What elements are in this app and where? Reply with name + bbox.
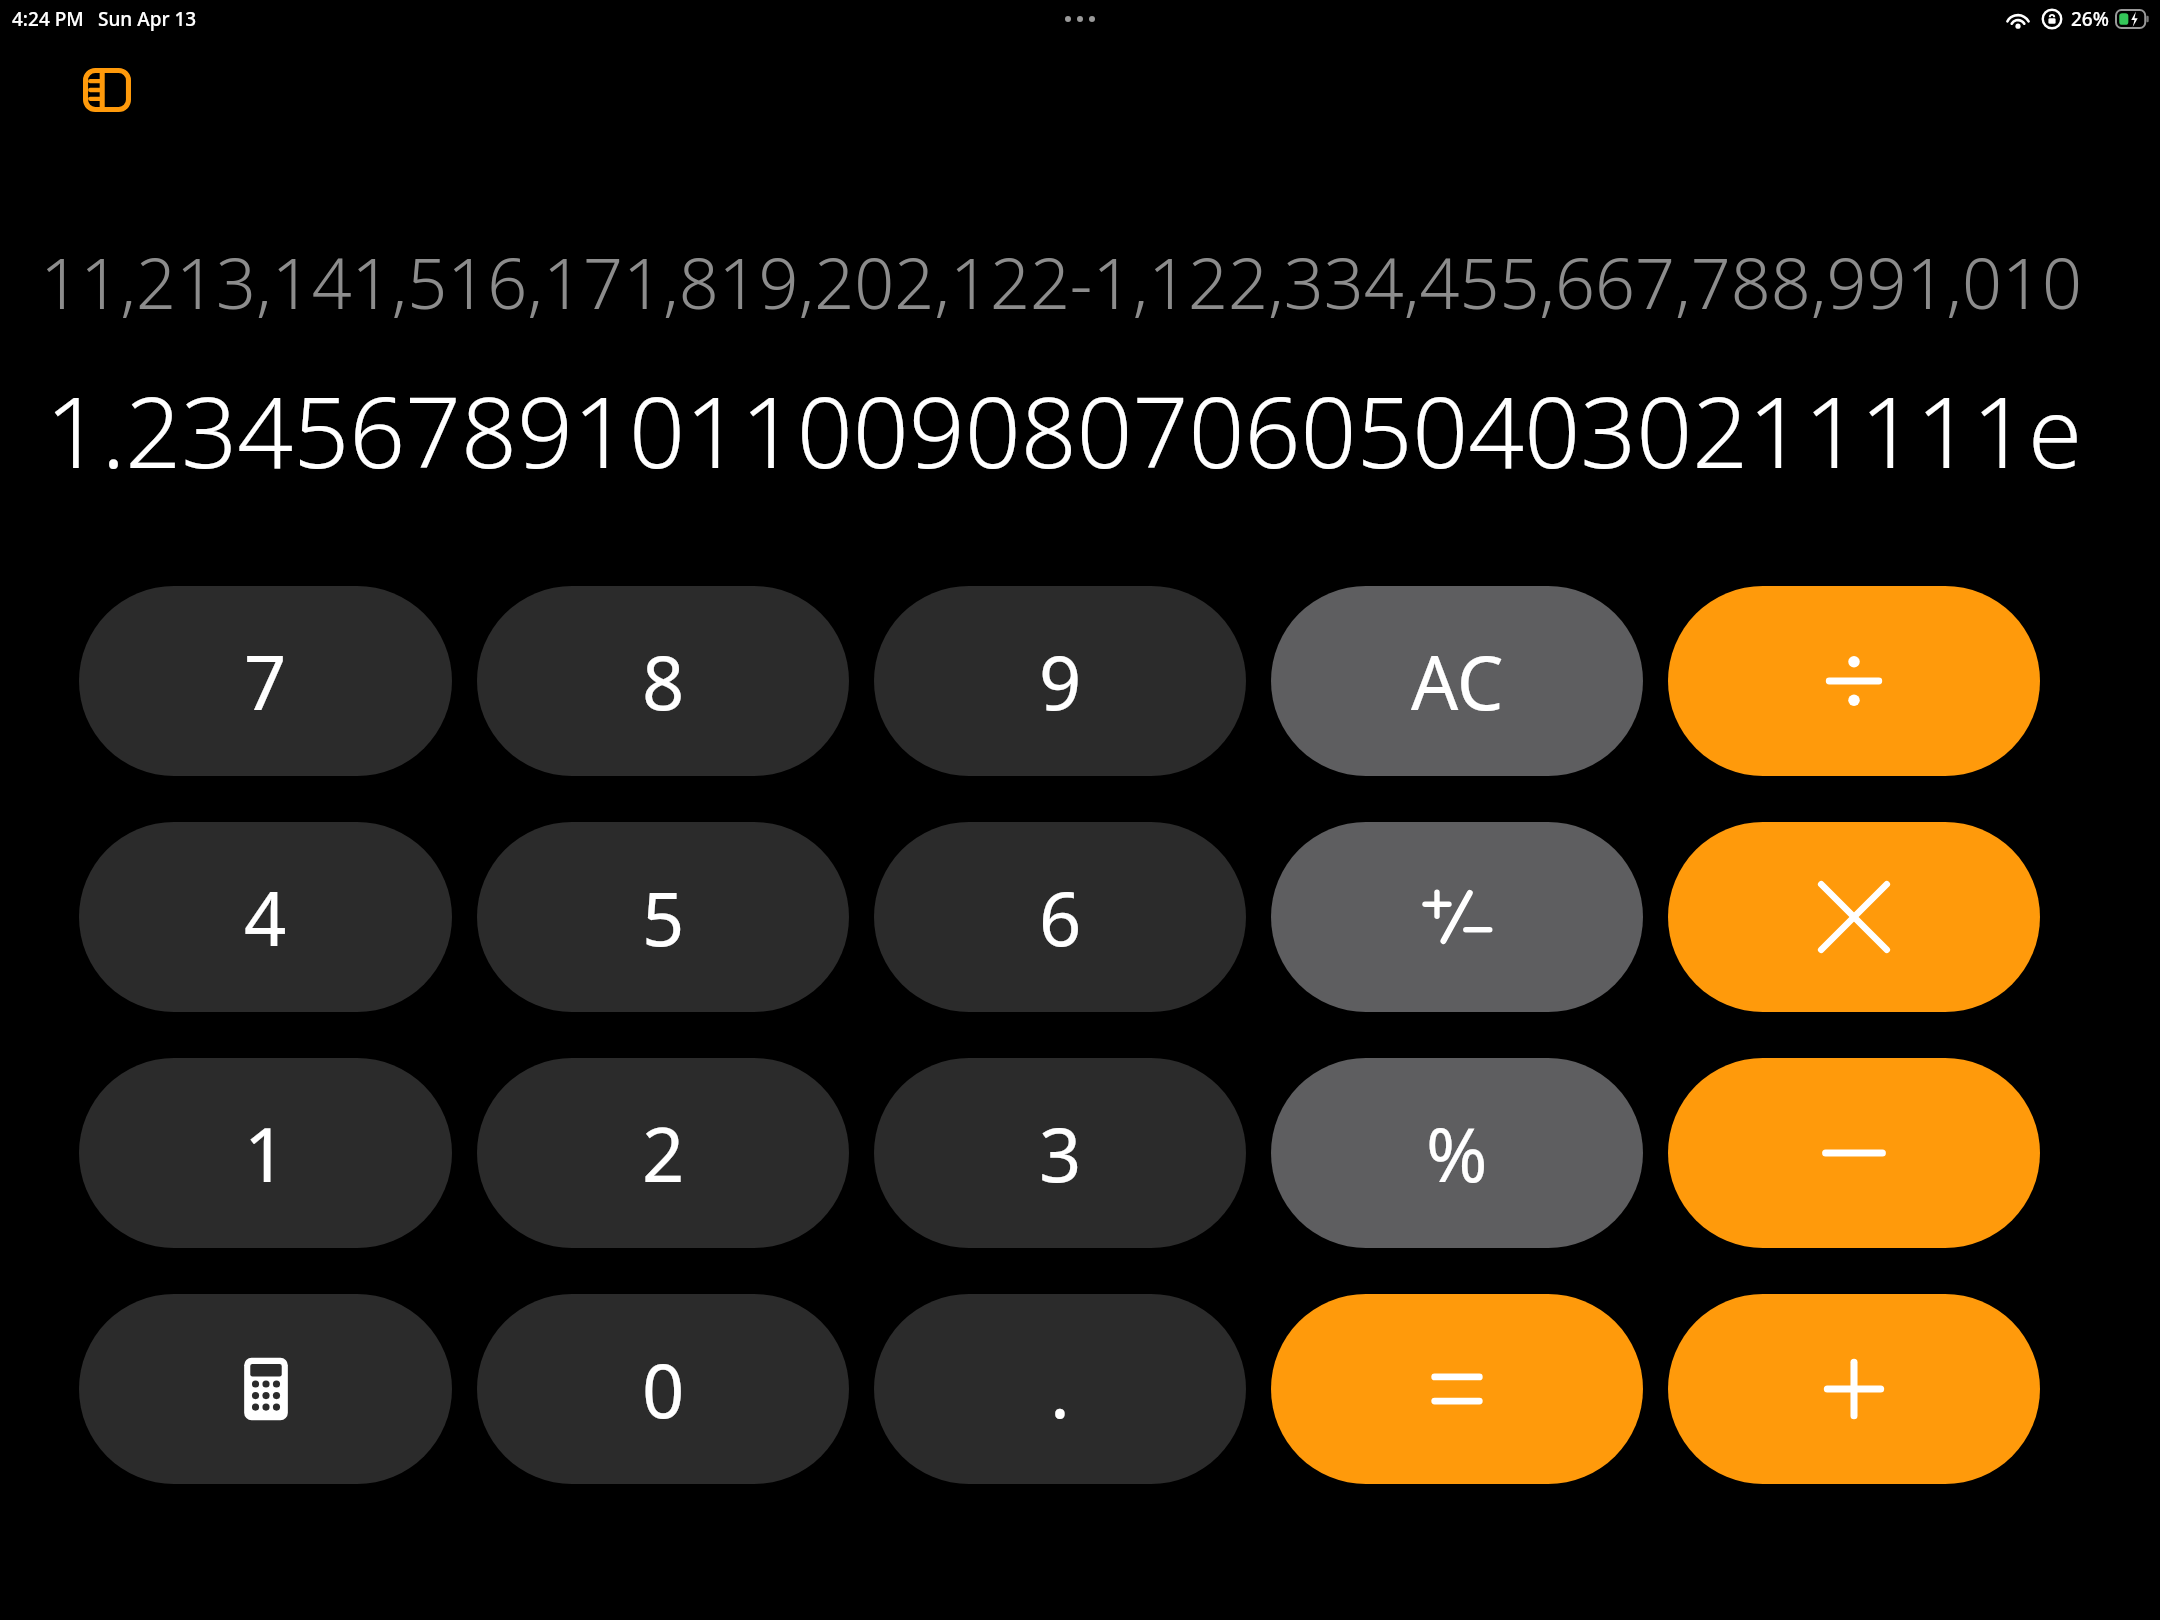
staticText: 7 — [244, 631, 287, 732]
staticText: Sun Apr 13 — [98, 6, 197, 32]
staticText: 6 — [1039, 867, 1082, 968]
staticText: . — [1050, 1339, 1070, 1440]
button[interactable]: 8 — [477, 586, 849, 776]
button[interactable]: Plus minus — [1271, 822, 1643, 1012]
staticText: 9 — [1039, 631, 1082, 732]
button[interactable]: Show sidebar — [78, 64, 136, 116]
button[interactable]: % — [1271, 1058, 1643, 1248]
staticText: 1.2345678910110090807060504030211111e34 — [4, 363, 2082, 496]
button[interactable]: . — [874, 1294, 1246, 1484]
button[interactable]: AC — [1271, 586, 1643, 776]
staticText: % — [1426, 1103, 1488, 1204]
button[interactable]: 6 — [874, 822, 1246, 1012]
staticText: AC — [1411, 631, 1504, 732]
staticText: 2 — [642, 1103, 685, 1204]
button[interactable]: Multiply — [1668, 822, 2040, 1012]
staticText: 5 — [642, 867, 685, 968]
button[interactable]: 7 — [79, 586, 452, 776]
staticText: 0 — [642, 1339, 685, 1440]
button[interactable]: 1 — [79, 1058, 452, 1248]
staticText: 4:24 PM — [12, 6, 84, 32]
staticText: 11,213,141,516,171,819,202,122-1,122,334… — [4, 234, 2082, 329]
button[interactable]: Subtract — [1668, 1058, 2040, 1248]
button[interactable]: 2 — [477, 1058, 849, 1248]
staticText: 8 — [642, 631, 685, 732]
staticText: 3 — [1039, 1103, 1082, 1204]
button[interactable]: Divide — [1668, 586, 2040, 776]
staticText: 4 — [244, 867, 287, 968]
button[interactable]: Add — [1668, 1294, 2040, 1484]
button[interactable]: 0 — [477, 1294, 849, 1484]
button[interactable]: Calculator history — [79, 1294, 452, 1484]
button[interactable]: Equals — [1271, 1294, 1643, 1484]
button[interactable]: 5 — [477, 822, 849, 1012]
button[interactable]: 9 — [874, 586, 1246, 776]
staticText: 26% — [2071, 6, 2109, 32]
staticText: 1 — [244, 1103, 287, 1204]
button[interactable]: 4 — [79, 822, 452, 1012]
button[interactable]: 3 — [874, 1058, 1246, 1248]
